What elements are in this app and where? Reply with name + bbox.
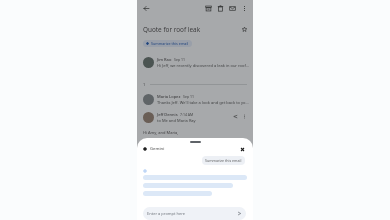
staticText: to Me and Maria Ray — [157, 118, 196, 123]
staticText: Hi Amy, and Maria, — [143, 130, 179, 135]
button[interactable]: Reply — [231, 112, 240, 121]
button[interactable]: Maria Lopez — [137, 91, 253, 108]
staticText: Sep 11 — [174, 57, 185, 62]
staticText: Jeff Dennis — [157, 112, 178, 117]
staticText: Jim Rao — [157, 57, 172, 62]
button[interactable]: Enter a prompt here — [143, 207, 246, 220]
button[interactable]: Mark unread — [226, 2, 238, 14]
staticText: Quote for roof leak — [143, 25, 201, 34]
staticText: Sep 11 — [183, 94, 194, 99]
button[interactable]: Star — [239, 24, 249, 34]
staticText: Enter a prompt here — [147, 211, 186, 216]
button[interactable]: Summarize this email — [202, 156, 245, 165]
staticText: Thanks Jeff. We'll take a look and get b… — [157, 100, 249, 105]
staticText: Summarize this email — [205, 158, 242, 163]
button[interactable]: Archive — [202, 2, 214, 14]
staticText: 7:14 AM — [180, 112, 194, 117]
button[interactable]: More — [240, 112, 249, 121]
button[interactable]: Summarize this email — [143, 40, 192, 47]
button[interactable]: More options — [238, 2, 250, 14]
button[interactable]: Close — [238, 145, 246, 153]
button[interactable]: 1 — [143, 79, 247, 89]
staticText: Hi Jeff, we recently discovered a leak i… — [157, 63, 249, 68]
staticText: 1 — [143, 82, 146, 87]
staticText: Maria Lopez — [157, 94, 181, 99]
button[interactable]: Jim Rao — [137, 54, 253, 71]
button[interactable]: Delete — [214, 2, 226, 14]
staticText: Gemini — [150, 146, 165, 152]
staticText: Summarize this email — [151, 41, 189, 46]
button[interactable]: Back — [140, 2, 152, 14]
button[interactable]: Jeff Dennis — [137, 109, 253, 126]
